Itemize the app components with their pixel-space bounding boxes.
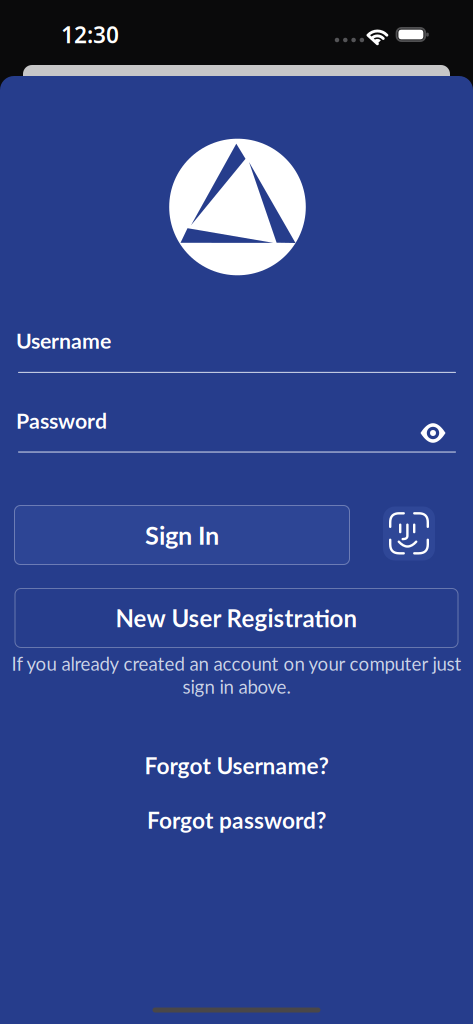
button[interactable]: Forgot password? — [106, 800, 366, 840]
staticText: Forgot Username? — [144, 752, 328, 779]
button[interactable] — [383, 506, 435, 560]
button[interactable]: Sign In — [14, 505, 350, 565]
staticText: sign in above. — [182, 675, 290, 698]
staticText: 12:30 — [61, 19, 119, 49]
staticText: New User Registration — [115, 604, 357, 632]
button[interactable] — [411, 415, 455, 451]
staticText: If you already created an account on you… — [11, 652, 461, 675]
staticText: Sign In — [145, 520, 219, 550]
staticText: Username — [16, 328, 111, 353]
button[interactable]: New User Registration — [14, 588, 458, 648]
button[interactable]: Forgot Username? — [106, 745, 366, 785]
staticText: Password — [16, 408, 107, 433]
staticText: Forgot password? — [147, 806, 326, 834]
